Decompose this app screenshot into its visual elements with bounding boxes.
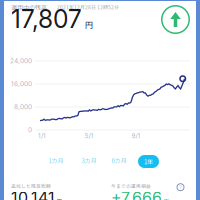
staticText: 追加した残高総額 xyxy=(11,182,51,189)
staticText: 10,141 xyxy=(11,188,55,200)
staticText: +7,666 xyxy=(111,188,162,200)
staticText: 17,807 xyxy=(11,4,82,34)
button[interactable]: 1カ月 xyxy=(44,154,68,167)
staticText: 24,000 xyxy=(10,57,32,65)
staticText: ? xyxy=(179,184,182,190)
staticText: 1カ月 xyxy=(48,156,63,165)
button[interactable]: 入金する xyxy=(161,5,190,34)
button[interactable]: 1年 xyxy=(138,155,159,168)
staticText: 運用中の残高 xyxy=(11,3,47,12)
staticText: 円 xyxy=(85,19,93,30)
staticText: 2021年12月28日 12時52分 xyxy=(57,3,119,11)
staticText: 5/1 xyxy=(84,132,93,140)
staticText: 8,000 xyxy=(14,103,32,111)
staticText: 1/1 xyxy=(38,132,46,140)
staticText: 今までの運用損益 xyxy=(111,182,151,189)
staticText: 円 xyxy=(163,197,168,200)
staticText: 9/1 xyxy=(131,132,140,140)
staticText: 6カ月 xyxy=(111,156,126,165)
staticText: 1年 xyxy=(144,157,153,166)
button[interactable]: 3カ月 xyxy=(77,154,101,167)
staticText: 16,000 xyxy=(11,80,32,88)
staticText: 3カ月 xyxy=(81,156,96,165)
staticText: 円 xyxy=(56,197,61,200)
button[interactable]: 運用損益について xyxy=(175,182,185,192)
staticText: 0 xyxy=(28,126,32,134)
button[interactable]: 6カ月 xyxy=(107,154,131,167)
